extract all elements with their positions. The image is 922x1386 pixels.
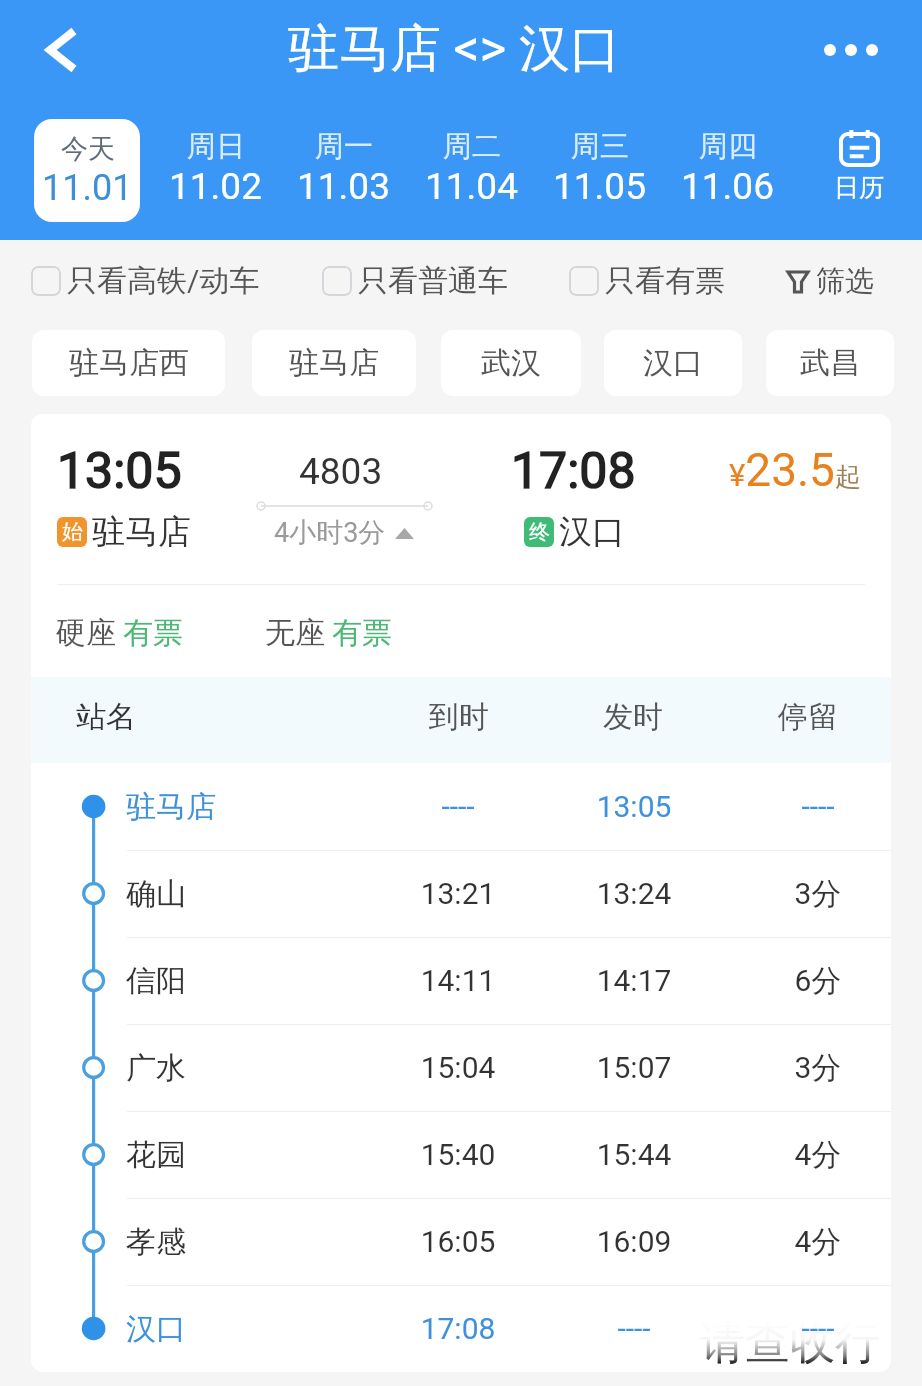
staticText: 15:04 [398, 1050, 518, 1085]
button[interactable]: 信阳 [31, 937, 891, 1024]
staticText: 站名 [76, 698, 136, 736]
staticText: 驻马店 <> 汉口 [288, 17, 621, 81]
staticText: 4803 [299, 450, 383, 493]
staticText: 周三 [571, 128, 629, 165]
staticText: 武昌 [800, 344, 860, 382]
staticText: 11.04 [425, 165, 518, 208]
button[interactable]: 周三 [535, 116, 663, 219]
staticText: 花园 [126, 1136, 186, 1174]
staticText: 筛选 [816, 263, 874, 300]
staticText: 有票 [123, 614, 183, 652]
staticText: 4小时3分 [274, 516, 386, 550]
staticText: 11.06 [681, 165, 774, 208]
button[interactable]: 驻马店西 [32, 330, 225, 396]
staticText: 终 [529, 519, 550, 545]
button[interactable]: 周一 [279, 116, 407, 219]
staticText: 今天 [61, 132, 115, 166]
staticText: 14:17 [574, 963, 694, 998]
staticText: 无座 [265, 614, 325, 652]
staticText: 只看高铁/动车 [67, 262, 260, 300]
button[interactable]: Back [18, 6, 106, 94]
staticText: 有票 [332, 614, 392, 652]
button[interactable]: 驻马店 [252, 330, 416, 396]
staticText: 13:24 [574, 876, 694, 911]
staticText: 驻马店西 [69, 344, 189, 382]
staticText: 只看有票 [605, 262, 725, 300]
button[interactable]: 只看普通车 [322, 253, 508, 309]
staticText: 驻马店 [126, 788, 216, 826]
button[interactable]: 孝感 [31, 1198, 891, 1285]
staticText: 周日 [187, 128, 245, 165]
staticText: ---- [758, 1311, 878, 1346]
staticText: 11.01 [42, 167, 133, 209]
button[interactable]: 硬座 [56, 614, 183, 652]
button[interactable]: 周四 [663, 116, 791, 219]
staticText: 16:05 [398, 1224, 518, 1259]
staticText: 14:11 [398, 963, 518, 998]
staticText: 信阳 [126, 962, 186, 1000]
button[interactable]: 武昌 [766, 330, 894, 396]
staticText: ¥23.5起 [729, 443, 861, 497]
button[interactable]: 广水 [31, 1024, 891, 1111]
staticText: 周一 [315, 128, 373, 165]
staticText: 只看普通车 [358, 262, 508, 300]
staticText: 广水 [126, 1049, 186, 1087]
staticText: 17:08 [398, 1311, 518, 1346]
staticText: 11.02 [169, 165, 262, 208]
button[interactable]: 13:05 [31, 414, 891, 583]
button[interactable]: 周二 [407, 116, 535, 219]
staticText: 驻马店 [289, 344, 379, 382]
staticText: 11.03 [297, 165, 390, 208]
staticText: ---- [574, 1311, 694, 1346]
staticText: 到时 [399, 698, 519, 736]
button[interactable]: 只看有票 [569, 253, 725, 309]
staticText: ---- [758, 789, 878, 824]
staticText: 17:08 [511, 442, 636, 501]
staticText: 汉口 [126, 1310, 186, 1348]
button[interactable]: 确山 [31, 850, 891, 937]
staticText: 16:09 [574, 1224, 694, 1259]
button[interactable]: 今天 [34, 119, 140, 222]
staticText: 硬座 [56, 614, 116, 652]
button[interactable]: 驻马店 [31, 763, 891, 850]
staticText: 11.05 [553, 165, 646, 208]
staticText: 15:40 [398, 1137, 518, 1172]
button[interactable]: 只看高铁/动车 [31, 253, 260, 309]
staticText: 15:44 [574, 1137, 694, 1172]
staticText: 3分 [758, 1049, 878, 1087]
button[interactable]: 无座 [265, 614, 392, 652]
staticText: 6分 [758, 962, 878, 1000]
button[interactable]: 汉口 [31, 1285, 891, 1372]
staticText: 周二 [443, 128, 501, 165]
staticText: 发时 [573, 698, 693, 736]
staticText: 孝感 [126, 1223, 186, 1261]
staticText: 确山 [126, 875, 186, 913]
staticText: 13:21 [398, 876, 518, 911]
staticText: 4分 [758, 1223, 878, 1261]
staticText: 汉口 [643, 344, 703, 382]
staticText: 周四 [699, 128, 757, 165]
staticText: ---- [398, 789, 518, 824]
staticText: 15:07 [574, 1050, 694, 1085]
button[interactable]: 周日 [151, 116, 279, 219]
staticText: 驻马店 [92, 511, 191, 553]
button[interactable]: More options [806, 22, 898, 78]
staticText: 13:05 [574, 789, 694, 824]
button[interactable]: 汉口 [604, 330, 742, 396]
staticText: 请查收行程 [700, 1317, 897, 1364]
button[interactable]: 花园 [31, 1111, 891, 1198]
staticText: 日历 [834, 172, 884, 203]
staticText: 3分 [758, 875, 878, 913]
button[interactable]: 筛选 [786, 253, 874, 309]
staticText: 停留 [748, 698, 868, 736]
staticText: 13:05 [57, 442, 182, 501]
button[interactable]: 武汉 [441, 330, 581, 396]
staticText: 武汉 [481, 344, 541, 382]
staticText: 汉口 [559, 511, 625, 553]
staticText: 始 [62, 519, 83, 545]
button[interactable]: Calendar [817, 122, 901, 218]
staticText: 4分 [758, 1136, 878, 1174]
